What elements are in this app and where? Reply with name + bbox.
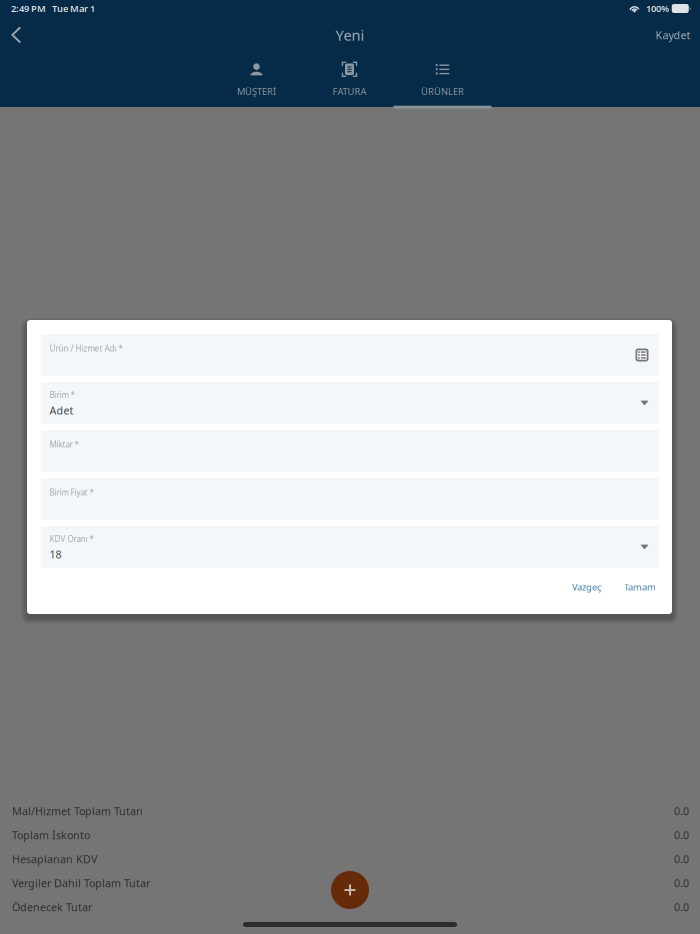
staticText: Mal/Hizmet Toplam Tutarı — [12, 804, 143, 818]
button[interactable]: Yeni ürün ekle — [331, 871, 369, 909]
button[interactable]: Kaydet — [647, 18, 699, 52]
staticText: 0.0 — [674, 876, 689, 890]
staticText: ÜRÜNLER — [421, 85, 464, 98]
button[interactable]: Tamam — [624, 576, 656, 598]
staticText: 2:49 PM — [11, 2, 46, 15]
button[interactable]: Ürün listesinden seç — [635, 348, 648, 361]
staticText: Tamam — [624, 581, 656, 593]
staticText: Kaydet — [655, 28, 690, 42]
staticText: 0.0 — [674, 828, 689, 842]
staticText: Birim * — [49, 390, 74, 400]
staticText: MÜŞTERİ — [237, 85, 276, 98]
staticText: Miktar * — [49, 439, 78, 450]
staticText: Vazgeç — [572, 581, 601, 593]
staticText: 0.0 — [674, 900, 689, 914]
staticText: 0.0 — [674, 804, 689, 818]
staticText: Vergiler Dahil Toplam Tutar — [12, 876, 150, 890]
button[interactable]: Back — [0, 18, 32, 52]
staticText: Yeni — [335, 25, 364, 45]
staticText: 0.0 — [674, 852, 689, 866]
staticText: Tue Mar 1 — [52, 2, 95, 15]
staticText: Ürün / Hizmet Adı * — [49, 343, 122, 354]
staticText: Hesaplanan KDV — [12, 852, 97, 866]
button[interactable]: FATURA — [300, 53, 399, 107]
staticText: Toplam İskonto — [12, 828, 90, 842]
staticText: KDV Oranı * — [49, 534, 93, 544]
button[interactable]: MÜŞTERİ — [207, 53, 306, 107]
button[interactable]: Vazgeç — [572, 576, 601, 598]
staticText: Adet — [49, 403, 73, 417]
staticText: 18 — [49, 547, 61, 561]
staticText: Birim Fiyat * — [49, 487, 93, 498]
staticText: Ödenecek Tutar — [12, 900, 92, 914]
button[interactable]: ÜRÜNLER — [393, 53, 492, 107]
staticText: FATURA — [332, 85, 366, 98]
staticText: 100% — [646, 2, 669, 15]
